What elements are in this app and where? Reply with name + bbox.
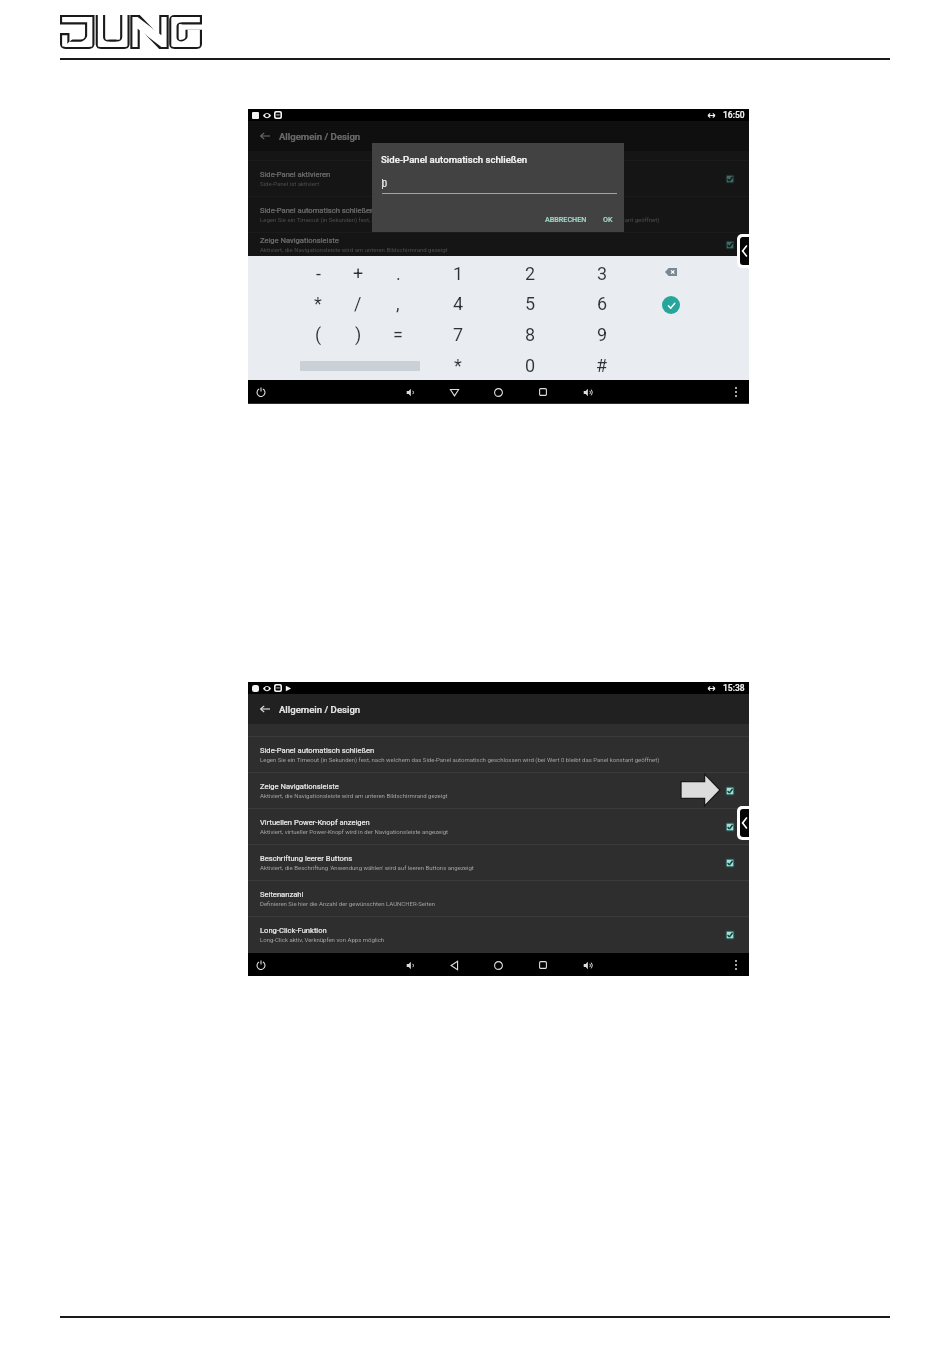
- staticText: 2: [525, 263, 536, 284]
- staticText: Side-Panel ist aktiviert: [260, 180, 320, 187]
- button[interactable]: =: [382, 320, 414, 348]
- button[interactable]: Home: [489, 955, 507, 975]
- staticText: ,: [396, 293, 400, 314]
- staticText: 6: [597, 293, 608, 314]
- button[interactable]: 9: [586, 320, 618, 348]
- button[interactable]: Toggle Virtuellen Power-Knopf anzeigen: [725, 822, 735, 832]
- staticText: Side-Panel aktivieren: [260, 170, 331, 179]
- staticText: 15:38: [723, 683, 745, 693]
- button[interactable]: Volume up: [578, 955, 596, 975]
- staticText: Aktiviert, die Beschriftung 'Anwendung w…: [260, 864, 474, 871]
- staticText: Seitenanzahl: [260, 890, 304, 899]
- button[interactable]: Toggle Beschriftung leerer Buttons: [725, 858, 735, 868]
- button[interactable]: Virtuellen Power-Knopf anzeigen: [248, 808, 749, 844]
- button[interactable]: Open side panel: [740, 809, 749, 837]
- button[interactable]: Volume up: [578, 382, 596, 402]
- button[interactable]: 7: [442, 320, 474, 348]
- staticText: Zeige Navigationsleiste: [260, 236, 339, 245]
- button[interactable]: Toggle Side-Panel aktivieren: [725, 174, 735, 184]
- staticText: Aktiviert, virtueller Power-Knopf wird i…: [260, 828, 449, 835]
- button[interactable]: 0: [514, 351, 546, 379]
- staticText: Side-Panel automatisch schließen: [260, 206, 375, 215]
- button[interactable]: Space: [300, 357, 420, 374]
- button[interactable]: OK: [598, 213, 617, 224]
- button[interactable]: Home: [489, 382, 507, 402]
- button[interactable]: Beschriftung leerer Buttons: [248, 844, 749, 880]
- button[interactable]: Toggle Zeige Navigationsleiste: [725, 240, 735, 250]
- button[interactable]: *: [442, 351, 474, 379]
- button[interactable]: 3: [586, 259, 618, 287]
- staticText: 9: [597, 324, 608, 345]
- staticText: OK: [603, 215, 613, 223]
- button[interactable]: /: [342, 289, 374, 317]
- staticText: Side-Panel automatisch schließen: [260, 746, 375, 755]
- button[interactable]: (: [302, 320, 334, 348]
- button[interactable]: 8: [514, 320, 546, 348]
- button[interactable]: ABBRECHEN: [542, 213, 590, 224]
- button[interactable]: 4: [442, 289, 474, 317]
- button[interactable]: Back: [256, 127, 274, 145]
- button[interactable]: Confirm: [662, 296, 680, 314]
- button[interactable]: Long-Click-Funktion: [248, 916, 749, 952]
- button[interactable]: Delete: [655, 258, 687, 286]
- staticText: Long-Click-Funktion: [260, 926, 327, 935]
- staticText: -: [316, 263, 321, 284]
- staticText: *: [314, 293, 322, 314]
- staticText: 7: [453, 324, 464, 345]
- button[interactable]: 6: [586, 289, 618, 317]
- staticText: Legen Sie ein Timeout (in Sekunden) fest…: [260, 756, 660, 763]
- staticText: (: [315, 324, 322, 345]
- button[interactable]: Back: [256, 700, 274, 718]
- button[interactable]: More options: [727, 955, 745, 975]
- staticText: Virtuellen Power-Knopf anzeigen: [260, 818, 370, 827]
- button[interactable]: Zeige Navigationsleiste: [248, 232, 749, 256]
- button[interactable]: Side-Panel automatisch schließen: [248, 196, 749, 232]
- button[interactable]: Power: [252, 955, 270, 975]
- staticText: 4: [453, 293, 464, 314]
- staticText: ABBRECHEN: [545, 215, 587, 223]
- button[interactable]: 2: [514, 259, 546, 287]
- button[interactable]: 1: [442, 259, 474, 287]
- button[interactable]: Volume down: [401, 382, 419, 402]
- button[interactable]: Side-Panel aktivieren: [248, 160, 749, 196]
- button[interactable]: Back: [445, 382, 463, 402]
- button[interactable]: #: [586, 351, 618, 379]
- staticText: Aktiviert, die Navigationsleiste wird am…: [260, 246, 448, 253]
- button[interactable]: +: [342, 259, 374, 287]
- staticText: 16:50: [723, 110, 745, 120]
- staticText: 0: [382, 179, 388, 190]
- button[interactable]: Recents: [534, 955, 552, 975]
- button[interactable]: Toggle Long-Click-Funktion: [725, 930, 735, 940]
- staticText: #: [596, 355, 608, 376]
- button[interactable]: ): [342, 320, 374, 348]
- staticText: Long-Click aktiv, Verknüpfen von Apps mö…: [260, 936, 385, 943]
- staticText: Aktiviert, die Navigationsleiste wird am…: [260, 792, 448, 799]
- button[interactable]: -: [302, 259, 334, 287]
- button[interactable]: Back: [445, 955, 463, 975]
- staticText: Definieren Sie hier die Anzahl der gewün…: [260, 900, 435, 907]
- button[interactable]: Volume down: [401, 955, 419, 975]
- staticText: Side-Panel automatisch schließen: [381, 154, 528, 165]
- staticText: =: [393, 324, 403, 345]
- button[interactable]: .: [382, 259, 414, 287]
- staticText: Allgemein / Design: [279, 131, 361, 142]
- button[interactable]: Open side panel: [740, 237, 749, 265]
- staticText: .: [396, 263, 401, 284]
- staticText: Zeige Navigationsleiste: [260, 782, 339, 791]
- button[interactable]: ,: [382, 289, 414, 317]
- button[interactable]: More options: [727, 382, 745, 402]
- button[interactable]: Zeige Navigationsleiste: [248, 772, 749, 808]
- staticText: 1: [453, 263, 464, 284]
- staticText: 0: [525, 355, 536, 376]
- button[interactable]: Recents: [534, 382, 552, 402]
- button[interactable]: Power: [252, 382, 270, 402]
- staticText: Legen Sie ein Timeout (in Sekunden) fest…: [260, 216, 660, 223]
- button[interactable]: Toggle Zeige Navigationsleiste: [725, 786, 735, 796]
- staticText: 5: [525, 293, 536, 314]
- staticText: *: [454, 355, 462, 376]
- button[interactable]: *: [302, 289, 334, 317]
- staticText: ): [355, 324, 362, 345]
- button[interactable]: Seitenanzahl: [248, 880, 749, 916]
- button[interactable]: 5: [514, 289, 546, 317]
- button[interactable]: Side-Panel automatisch schließen: [248, 736, 749, 772]
